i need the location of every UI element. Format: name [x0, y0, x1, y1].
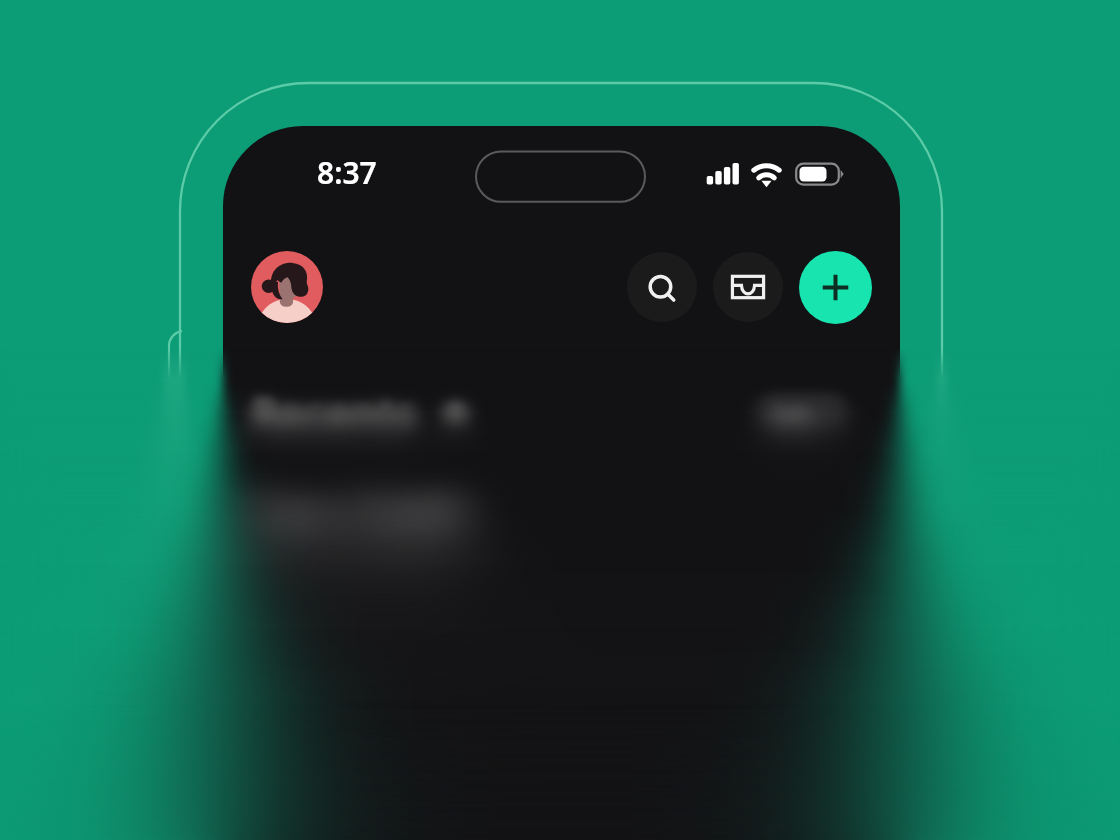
button[interactable]: Recents [251, 384, 417, 441]
staticText: Recents [251, 384, 417, 441]
button[interactable]: Edit [755, 394, 849, 434]
staticText: Edit [773, 402, 812, 431]
staticText: 8:37 [317, 152, 377, 193]
staticText: 8:37 [317, 152, 377, 193]
staticText: 8:37 [317, 152, 377, 193]
staticText: 8:37 [317, 152, 377, 193]
staticText: Edit [773, 402, 812, 431]
staticText: Tue 12:40 [251, 490, 463, 553]
staticText: Edit [773, 402, 812, 431]
staticText: Edit [773, 402, 812, 431]
staticText: Tue 12:40 [251, 490, 463, 553]
staticText: 8:37 [317, 152, 377, 193]
staticText: Edit [773, 402, 812, 431]
staticText: Recents [251, 384, 417, 441]
staticText: 8:37 [317, 152, 377, 193]
button[interactable]: Search [627, 252, 697, 322]
staticText: Recents [251, 384, 417, 441]
staticText: Edit [773, 402, 812, 431]
staticText: Tue 12:40 [251, 490, 463, 553]
staticText: 8:37 [317, 152, 377, 193]
staticText: Tue 12:40 [251, 490, 463, 553]
staticText: Recents [251, 384, 417, 441]
staticText: Recents [251, 384, 417, 441]
staticText: Recents [251, 384, 417, 441]
staticText: 8:37 [317, 152, 377, 193]
button[interactable]: More options [445, 403, 466, 424]
staticText: Edit [773, 402, 812, 431]
staticText: Tue 12:40 [251, 490, 463, 553]
button[interactable] [251, 596, 871, 716]
staticText: Recents [251, 384, 417, 441]
staticText: 8:37 [317, 152, 377, 193]
button[interactable] [251, 736, 871, 840]
staticText: Recents [251, 384, 417, 441]
staticText: Edit [773, 402, 812, 431]
button[interactable]: Tue 12:40 [251, 490, 463, 553]
staticText: Tue 12:40 [251, 490, 463, 553]
button[interactable]: Profile [251, 251, 323, 323]
button[interactable]: Inbox [713, 252, 783, 322]
staticText: Tue 12:40 [251, 490, 463, 553]
button[interactable]: Create new [799, 251, 872, 324]
staticText: Tue 12:40 [251, 490, 463, 553]
staticText: Tue 12:40 [251, 490, 463, 553]
staticText: Recents [251, 384, 417, 441]
staticText: Edit [773, 402, 812, 431]
